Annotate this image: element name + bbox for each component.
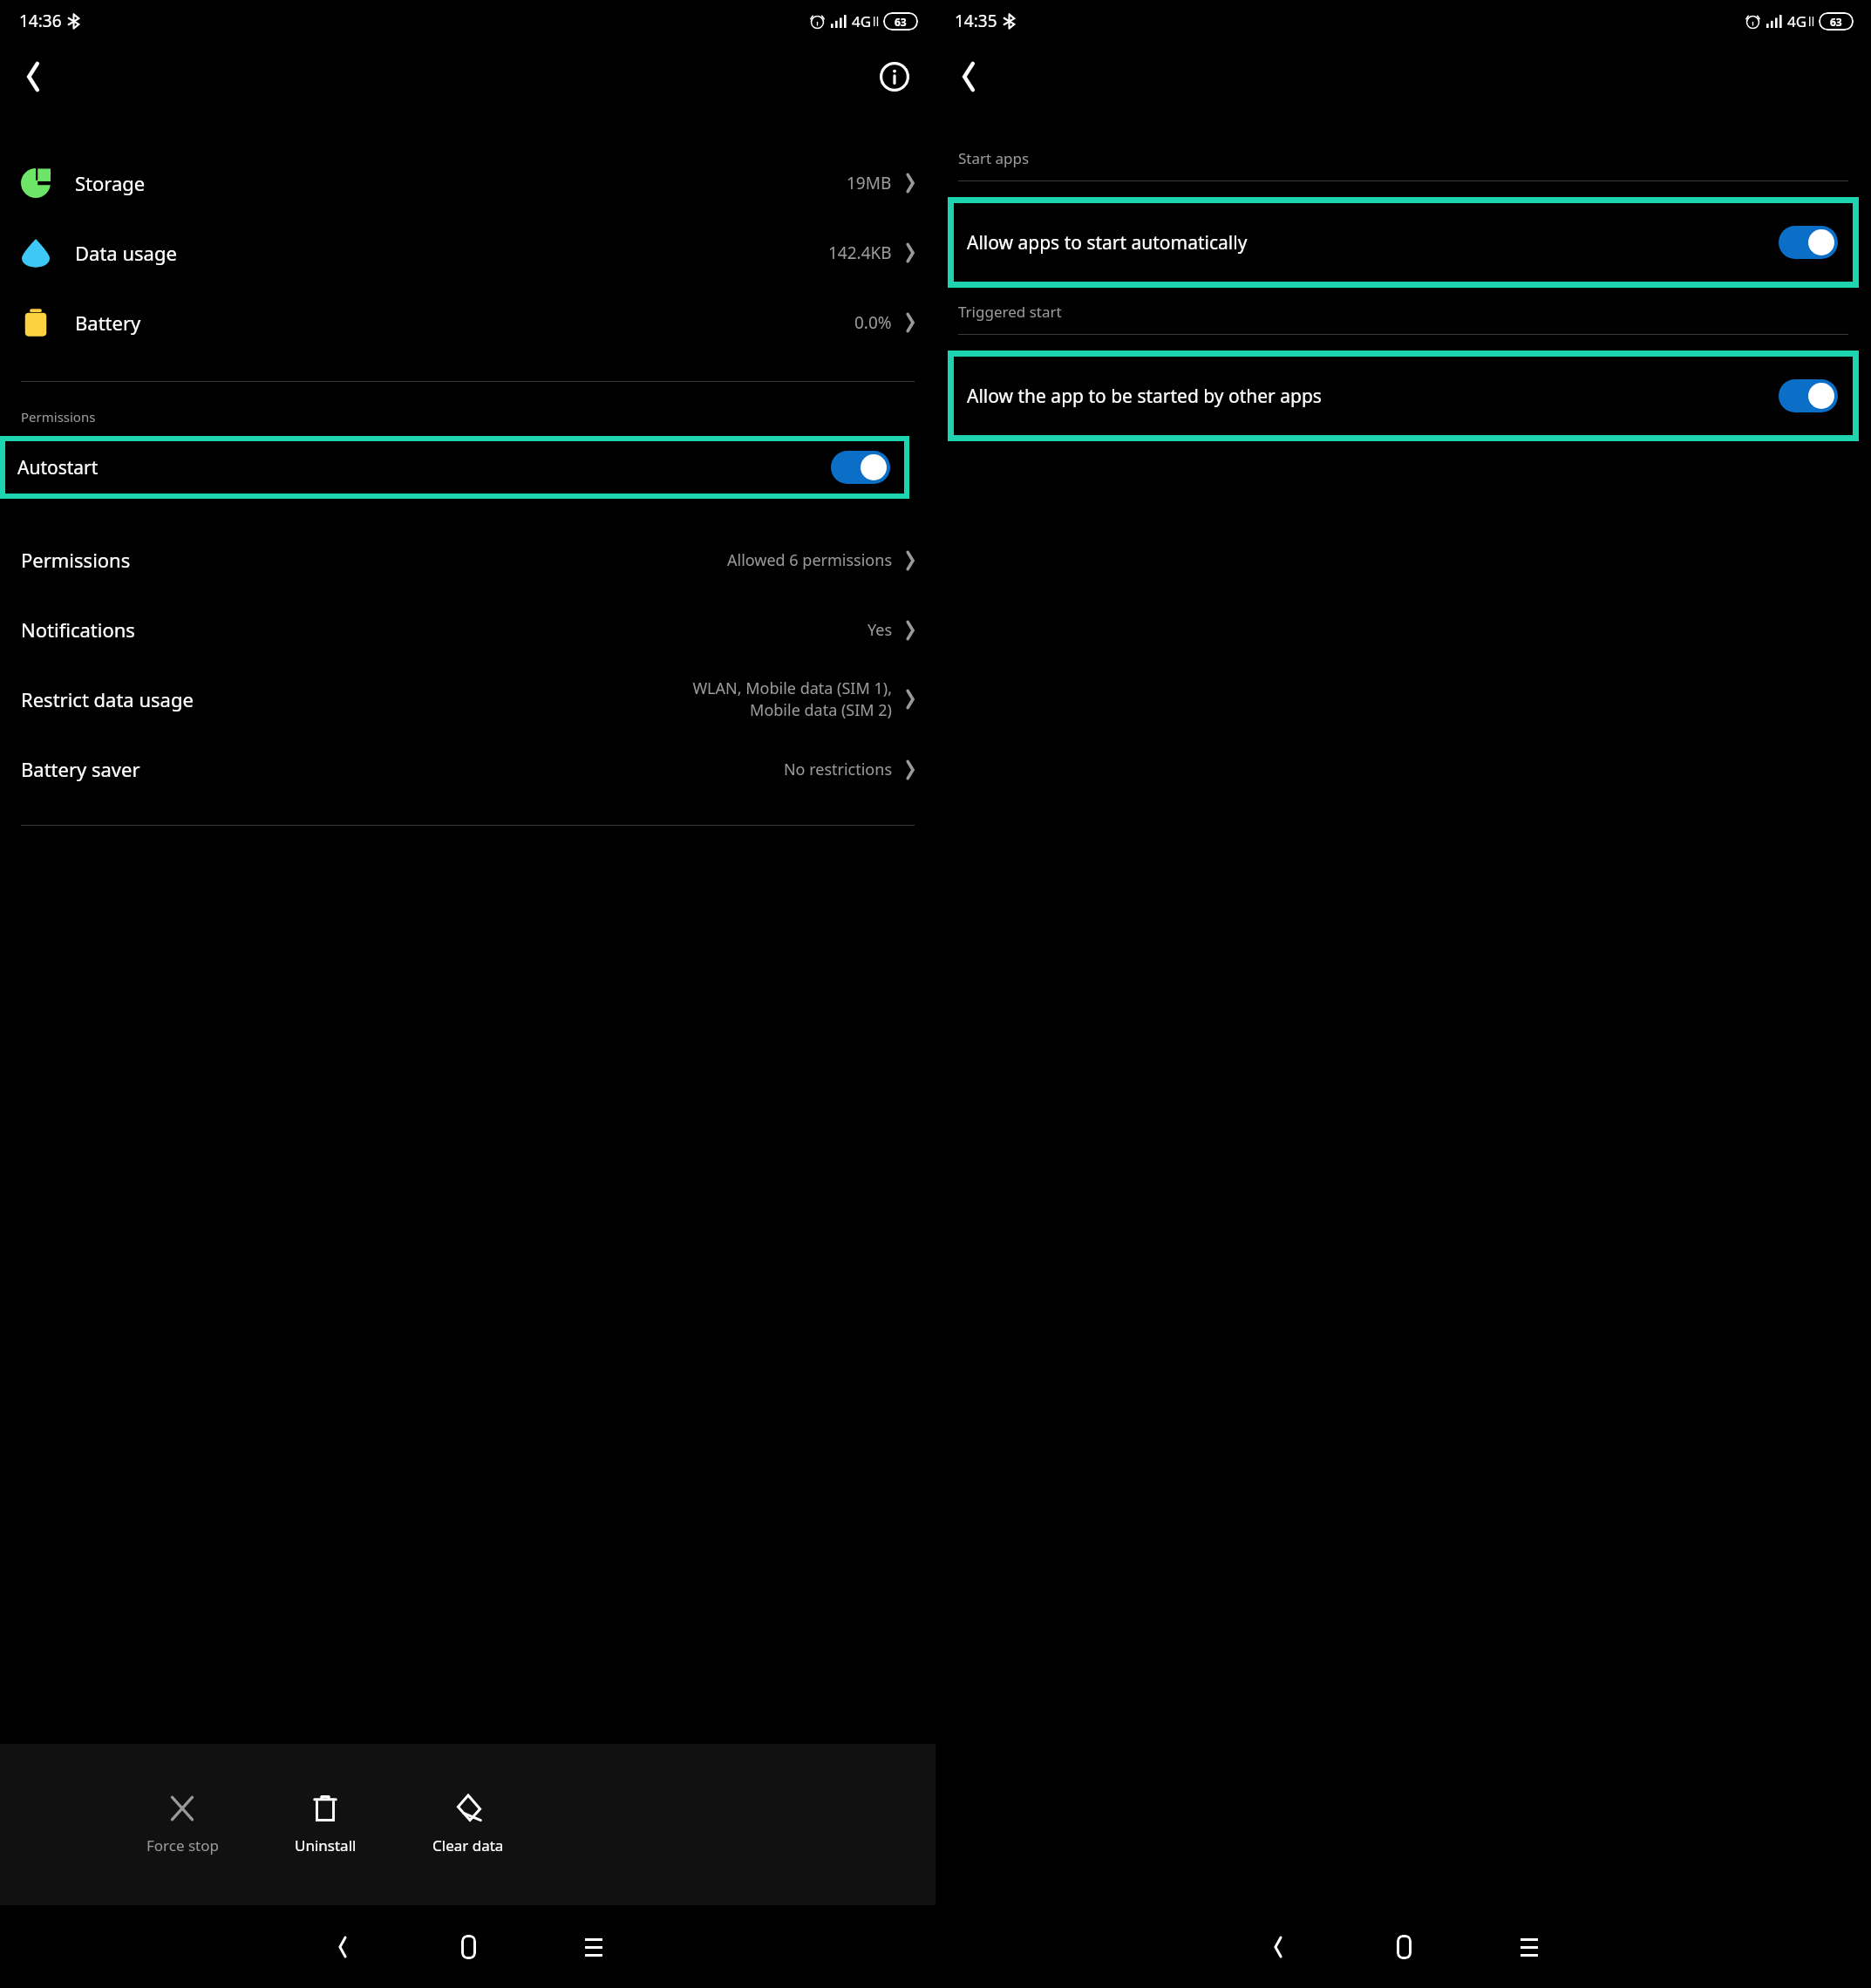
- button[interactable]: Battery saver: [0, 734, 935, 804]
- button[interactable]: Allow apps to start automatically: [948, 197, 1859, 288]
- button[interactable]: Toggle on: [1779, 226, 1838, 259]
- button[interactable]: Data usage: [0, 218, 935, 288]
- staticText: Force stop: [146, 1835, 219, 1855]
- staticText: Start apps: [958, 148, 1030, 168]
- button[interactable]: Storage: [0, 148, 935, 218]
- staticText: Battery saver: [21, 756, 140, 782]
- staticText: Notifications: [21, 616, 135, 643]
- staticText: 63: [1830, 15, 1842, 29]
- button[interactable]: Clear data: [417, 1794, 520, 1855]
- button[interactable]: Toggle on: [1779, 379, 1838, 412]
- staticText: Battery: [75, 310, 141, 336]
- button[interactable]: Back: [1241, 1910, 1316, 1985]
- button[interactable]: Home: [1366, 1910, 1441, 1985]
- staticText: Allowed 6 permissions: [727, 549, 892, 571]
- button[interactable]: Restrict data usage: [0, 664, 935, 734]
- staticText: 0.0%: [854, 311, 892, 334]
- button[interactable]: Back: [946, 54, 991, 99]
- staticText: Clear data: [432, 1835, 504, 1855]
- staticText: WLAN, Mobile data (SIM 1), Mobile data (…: [692, 677, 892, 721]
- staticText: No restrictions: [783, 759, 892, 780]
- staticText: 63: [895, 15, 907, 29]
- button[interactable]: Battery: [0, 288, 935, 357]
- staticText: Data usage: [75, 240, 177, 266]
- staticText: Autostart: [17, 455, 99, 480]
- button[interactable]: Recents: [1492, 1910, 1567, 1985]
- staticText: Restrict data usage: [21, 686, 194, 712]
- staticText: 14:35: [955, 10, 997, 32]
- staticText: Yes: [867, 619, 892, 641]
- button[interactable]: Home: [431, 1910, 506, 1985]
- staticText: Allow apps to start automatically: [967, 230, 1248, 255]
- button[interactable]: App info: [874, 57, 915, 97]
- button[interactable]: Toggle on: [831, 451, 890, 484]
- button[interactable]: Back: [10, 54, 56, 99]
- button[interactable]: Recents: [556, 1910, 631, 1985]
- staticText: Permissions: [21, 547, 131, 573]
- staticText: 19MB: [847, 172, 892, 194]
- button[interactable]: Autostart: [0, 436, 909, 499]
- button[interactable]: Allow the app to be started by other app…: [948, 351, 1859, 441]
- staticText: Uninstall: [295, 1835, 357, 1855]
- staticText: 14:36: [19, 10, 62, 32]
- staticText: 4G: [1787, 11, 1807, 31]
- staticText: Storage: [75, 170, 146, 196]
- staticText: Triggered start: [958, 302, 1062, 322]
- staticText: 142.4KB: [828, 242, 892, 264]
- button[interactable]: Back: [305, 1910, 380, 1985]
- button[interactable]: Notifications: [0, 595, 935, 664]
- staticText: 4G: [852, 11, 872, 31]
- button[interactable]: Force stop: [131, 1794, 234, 1855]
- staticText: Permissions: [21, 408, 96, 426]
- button[interactable]: Permissions: [0, 525, 935, 595]
- staticText: Allow the app to be started by other app…: [967, 384, 1322, 409]
- button[interactable]: Uninstall: [274, 1794, 377, 1855]
